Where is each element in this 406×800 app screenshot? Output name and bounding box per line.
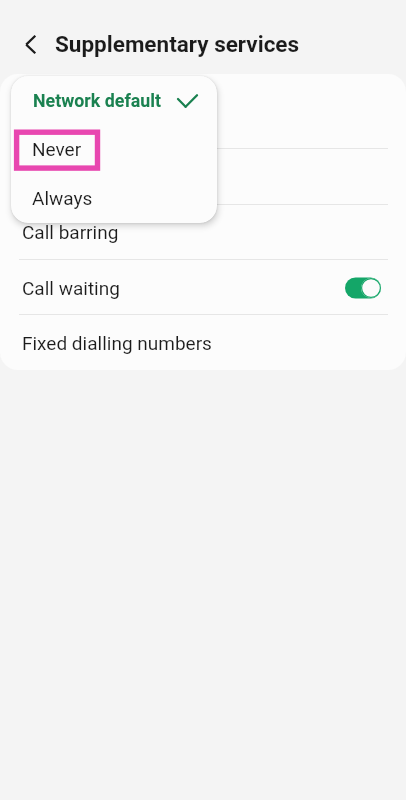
button[interactable]: Call forwarding	[0, 74, 406, 149]
button[interactable]: Call waiting	[0, 260, 406, 315]
staticText: Call forwarding	[22, 90, 151, 112]
button[interactable]: Navigate up	[7, 21, 55, 69]
staticText: Always	[32, 187, 93, 209]
staticText: Network default	[22, 115, 132, 133]
button[interactable]: Always	[11, 173, 217, 223]
button[interactable]: Network default	[11, 76, 217, 125]
staticText: Fixed dialling numbers	[22, 332, 212, 354]
staticText: Call barring	[22, 166, 119, 188]
button[interactable]: Fixed dialling numbers	[0, 315, 406, 370]
button[interactable]: Never	[11, 125, 217, 173]
button[interactable]: Call waiting toggle	[340, 273, 386, 303]
staticText: Network default	[33, 90, 162, 111]
button[interactable]: Call barring	[0, 204, 406, 259]
button[interactable]: Call barring	[0, 149, 406, 205]
staticText: Never	[32, 138, 82, 160]
staticText: Call waiting	[22, 277, 120, 299]
staticText: Call barring	[22, 221, 119, 243]
staticText: Supplementary services	[55, 31, 300, 57]
